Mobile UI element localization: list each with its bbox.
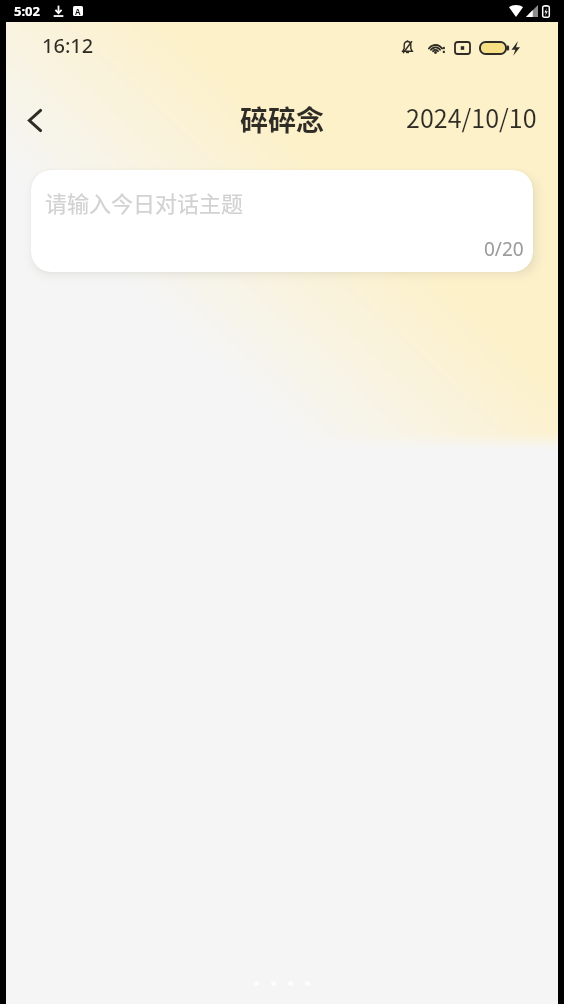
button[interactable]: 请输入今日对话主题 xyxy=(31,170,533,272)
staticText: A xyxy=(75,6,81,16)
staticText: 16:12 xyxy=(42,32,94,59)
button[interactable]: Back xyxy=(11,96,59,144)
staticText: 请输入今日对话主题 xyxy=(45,186,244,218)
staticText: 2024/10/10 xyxy=(406,99,537,135)
staticText: 碎碎念 xyxy=(240,99,325,140)
staticText: 0/20 xyxy=(484,236,524,262)
staticText: 5:02 xyxy=(14,2,40,20)
